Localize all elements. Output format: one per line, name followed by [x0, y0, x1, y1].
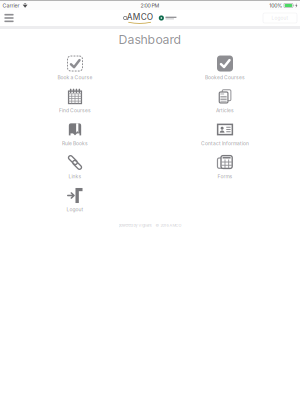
staticText: Articles: [216, 107, 234, 113]
button[interactable]: Logout: [263, 13, 297, 23]
staticText: Forms: [217, 173, 232, 179]
staticText: Links: [68, 173, 81, 179]
button[interactable]: Rule Books: [0, 121, 150, 146]
button[interactable]: Find Courses: [0, 88, 150, 113]
staticText: Book a Course: [57, 74, 92, 80]
staticText: Carrier: [2, 2, 19, 9]
button[interactable]: Forms: [150, 154, 300, 179]
staticText: Logout: [271, 15, 288, 21]
staticText: Find Courses: [59, 107, 91, 113]
staticText: Contact Information: [201, 140, 249, 146]
button[interactable]: Links: [0, 154, 150, 179]
staticText: powered by Vigilant © 2016 AMCO: [118, 223, 181, 228]
staticText: Logout: [66, 206, 83, 212]
staticText: Rule Books: [62, 140, 88, 146]
button[interactable]: Contact Information: [150, 121, 300, 146]
button[interactable]: Book a Course: [0, 55, 150, 80]
button[interactable]: Logout: [0, 187, 150, 212]
staticText: 2:00 PM: [140, 2, 159, 9]
staticText: AMCO: [127, 12, 153, 22]
button[interactable]: Articles: [150, 88, 300, 113]
staticText: Booked Courses: [205, 74, 245, 80]
staticText: 100%: [269, 2, 282, 9]
button[interactable]: Menu: [0, 10, 18, 25]
staticText: Dashboard: [118, 32, 181, 47]
button[interactable]: Booked Courses: [150, 55, 300, 80]
